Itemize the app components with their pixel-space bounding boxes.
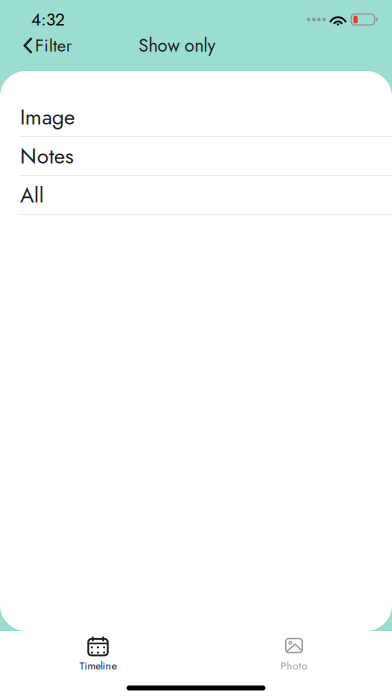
button[interactable]: Filter — [0, 26, 82, 65]
staticText: Show only — [138, 32, 215, 58]
staticText: All — [20, 180, 44, 210]
button[interactable]: All — [0, 176, 392, 215]
staticText: Timeline — [79, 658, 116, 673]
button[interactable]: Image — [0, 98, 392, 137]
staticText: Image — [20, 102, 75, 132]
staticText: 4:32 — [31, 7, 65, 32]
staticText: Photo — [280, 658, 307, 673]
button[interactable]: Notes — [0, 137, 392, 176]
button[interactable]: Photo — [196, 630, 392, 677]
staticText: Notes — [20, 141, 74, 171]
button[interactable]: Timeline — [0, 630, 196, 677]
staticText: Filter — [35, 33, 72, 58]
